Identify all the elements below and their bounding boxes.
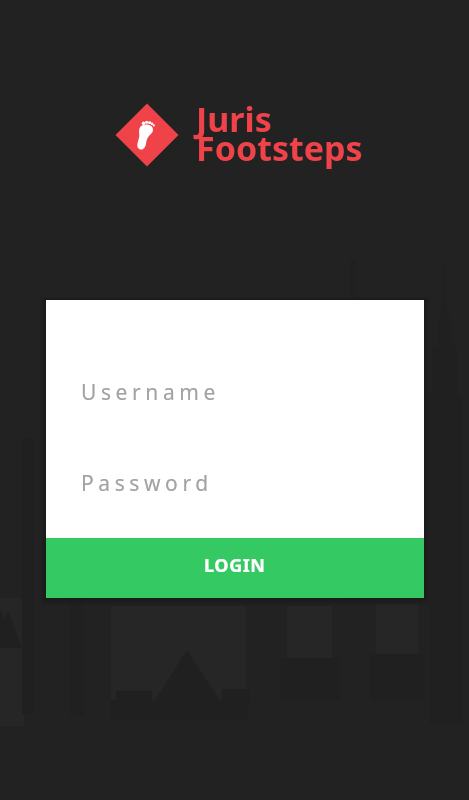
button[interactable]: LOGIN bbox=[46, 538, 424, 598]
staticText: Footsteps bbox=[196, 125, 363, 171]
button[interactable]: Username bbox=[46, 362, 424, 422]
staticText: Juris bbox=[196, 96, 272, 142]
button[interactable]: Password bbox=[46, 453, 424, 513]
button[interactable]: Juris Footsteps bbox=[114, 100, 374, 180]
staticText: LOGIN bbox=[204, 553, 266, 578]
staticText: Username bbox=[81, 378, 220, 407]
staticText: Password bbox=[81, 469, 213, 498]
